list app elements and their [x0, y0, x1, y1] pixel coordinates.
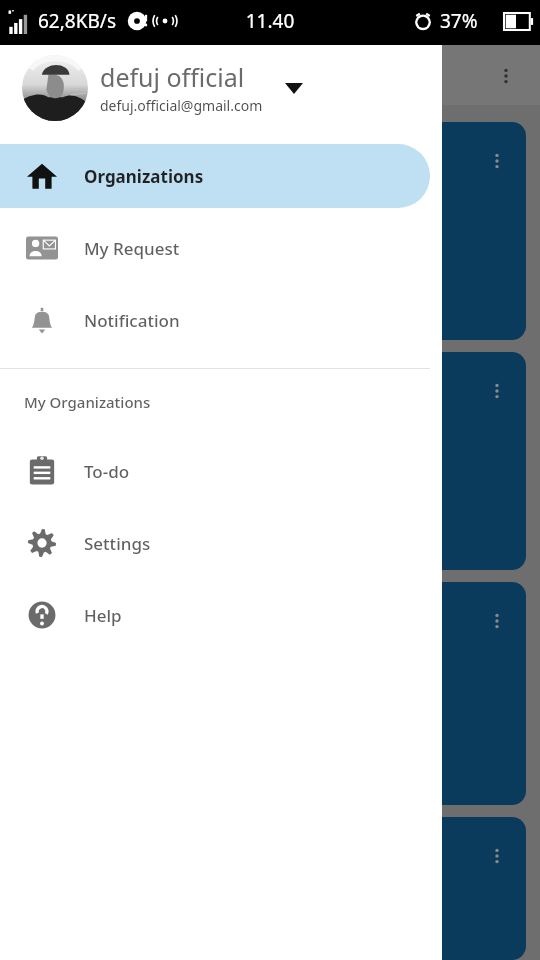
button[interactable]: Card menu: [480, 839, 514, 873]
staticText: Organizations: [84, 165, 204, 188]
button[interactable]: Card menu: [14, 122, 526, 340]
staticText: My Organizations: [24, 392, 151, 412]
staticText: 62,8KB/s: [38, 8, 116, 34]
button[interactable]: defuj official: [0, 45, 442, 130]
button[interactable]: Card menu: [14, 817, 526, 960]
button[interactable]: To-do: [0, 435, 442, 507]
staticText: 11.40: [0, 8, 540, 34]
staticText: Notification: [84, 309, 180, 332]
staticText: To-do: [84, 460, 130, 483]
button[interactable]: Card menu: [480, 604, 514, 638]
button[interactable]: Settings: [0, 507, 442, 579]
button[interactable]: More options: [488, 58, 524, 94]
staticText: defuj.official@gmail.com: [100, 96, 263, 115]
staticText: Settings: [84, 532, 151, 555]
button[interactable]: Card menu: [14, 582, 526, 805]
button[interactable]: Card menu: [14, 352, 526, 570]
staticText: Help: [84, 604, 122, 627]
staticText: defuj official: [100, 60, 245, 94]
staticText: My Request: [84, 237, 180, 260]
staticText: 37%: [440, 8, 478, 34]
button[interactable]: Card menu: [480, 144, 514, 178]
button[interactable]: Switch account: [264, 58, 324, 118]
button[interactable]: Help: [0, 579, 442, 651]
button[interactable]: Card menu: [480, 374, 514, 408]
button[interactable]: Notification: [0, 284, 442, 356]
button[interactable]: My Request: [0, 212, 442, 284]
button[interactable]: Organizations: [0, 140, 442, 212]
